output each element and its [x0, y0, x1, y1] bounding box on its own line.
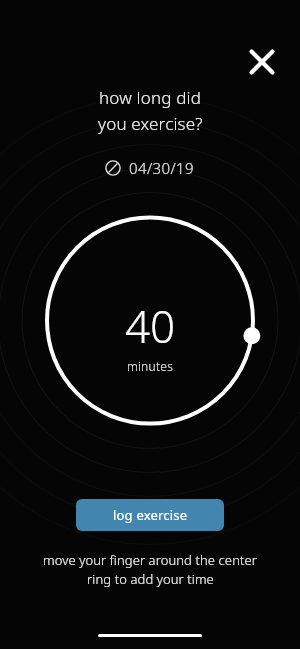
staticText: 40 — [125, 296, 176, 356]
staticText: 04/30/19 — [129, 158, 195, 178]
button[interactable]: log exercise — [76, 499, 224, 531]
staticText: minutes — [127, 358, 174, 374]
staticText: you exercise? — [98, 112, 203, 135]
staticText: log exercise — [113, 506, 188, 524]
button[interactable]: Close — [240, 40, 284, 84]
staticText: how long did — [99, 86, 202, 109]
button[interactable]: 04/30/19 — [105, 158, 195, 178]
staticText: ring to add your time — [87, 570, 214, 588]
staticText: move your finger around the center — [43, 551, 257, 569]
